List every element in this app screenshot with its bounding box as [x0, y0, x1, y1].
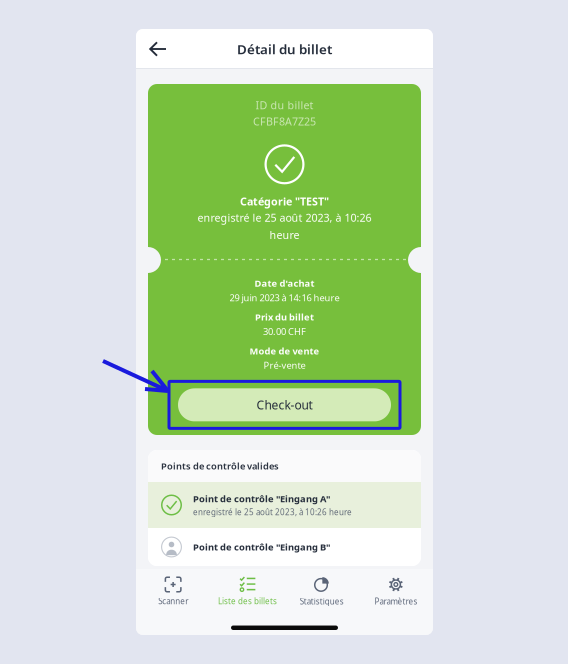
staticText: Paramètres [374, 596, 417, 607]
staticText: Check-out [256, 397, 312, 413]
staticText: Statistiques [300, 596, 344, 607]
staticText: CFBF8A7Z25 [253, 114, 316, 128]
staticText: Scanner [158, 596, 188, 606]
staticText: 29 juin 2023 à 14:16 heure [229, 291, 339, 304]
button[interactable]: Liste des billets [210, 569, 284, 612]
staticText: Mode de vente [249, 345, 319, 357]
staticText: Détail du billet [237, 40, 332, 58]
button[interactable]: Point de contrôle "Eingang B" [148, 528, 421, 566]
button[interactable]: Paramètres [359, 569, 433, 613]
button[interactable]: Statistiques [284, 569, 359, 613]
staticText: Points de contrôle valides [161, 460, 279, 472]
staticText: Point de contrôle "Eingang A" [193, 492, 330, 505]
staticText: Liste des billets [218, 596, 277, 606]
button[interactable]: Scanner [136, 569, 210, 612]
staticText: ID du billet [255, 98, 313, 112]
button[interactable]: Check-out [169, 381, 400, 428]
staticText: Date d'achat [254, 277, 314, 289]
staticText: Pré-vente [263, 359, 305, 371]
button[interactable]: Back [136, 29, 180, 69]
staticText: Catégorie "TEST" [240, 194, 329, 208]
staticText: Prix du billet [255, 311, 314, 323]
staticText: heure [269, 228, 299, 242]
staticText: enregistré le 25 août 2023, à 10:26 [197, 210, 371, 225]
button[interactable]: Point de contrôle "Eingang A" [148, 482, 421, 528]
staticText: 30.00 CHF [263, 325, 306, 338]
staticText: Point de contrôle "Eingang B" [193, 541, 330, 553]
staticText: enregistré le 25 août 2023, à 10:26 heur… [193, 507, 352, 517]
